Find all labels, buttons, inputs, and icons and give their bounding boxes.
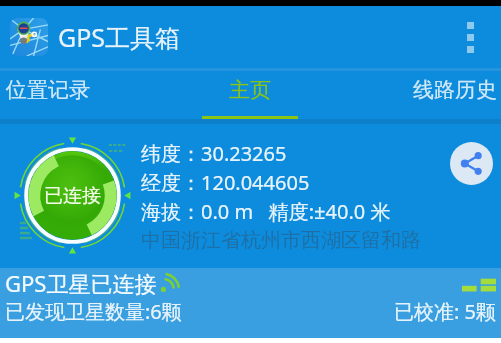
staticText: GPS卫星已连接 bbox=[5, 268, 157, 298]
staticText: 线路历史 bbox=[413, 77, 497, 103]
button[interactable]: 主页 bbox=[170, 69, 330, 120]
staticText: 已校准: 5颗 bbox=[394, 298, 496, 325]
button[interactable]: 线路历史 bbox=[341, 69, 501, 120]
staticText: 中国浙江省杭州市西湖区留和路 bbox=[141, 228, 421, 253]
staticText: 主页 bbox=[229, 77, 271, 103]
button[interactable]: More options bbox=[448, 15, 492, 59]
staticText: 经度：120.044605 bbox=[141, 169, 310, 196]
staticText: 已发现卫星数量:6颗 bbox=[5, 298, 182, 325]
button[interactable]: Share bbox=[450, 142, 493, 185]
staticText: 已连接 bbox=[44, 184, 101, 208]
button[interactable]: 位置记录 bbox=[0, 69, 160, 120]
staticText: 位置记录 bbox=[6, 77, 90, 103]
staticText: 海拔：0.0 m 精度:±40.0 米 bbox=[141, 198, 391, 225]
staticText: GPS工具箱 bbox=[58, 20, 181, 54]
button[interactable] bbox=[0, 69, 501, 120]
staticText: 纬度：30.23265 bbox=[141, 140, 287, 167]
